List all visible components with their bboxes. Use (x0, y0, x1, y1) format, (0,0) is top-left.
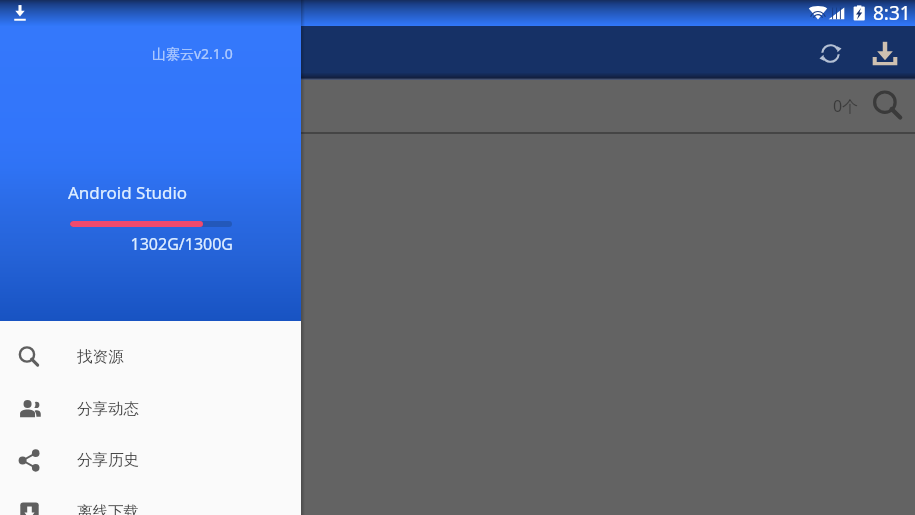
staticText: 山寨云v2.1.0 (152, 44, 233, 63)
staticText: 8:31 (873, 0, 911, 26)
staticText: 找资源 (77, 347, 124, 367)
staticText: 离线下载 (77, 502, 139, 515)
button[interactable]: 离线下载 (0, 486, 301, 515)
button[interactable]: Search (865, 83, 911, 129)
button[interactable]: Download (862, 30, 908, 76)
button[interactable]: Refresh (807, 30, 853, 76)
button[interactable]: 分享动态 (0, 383, 301, 435)
staticText: 分享动态 (77, 399, 139, 419)
staticText: 1302G/1300G (70, 233, 233, 255)
staticText: 分享历史 (77, 450, 139, 470)
staticText: Android Studio (68, 181, 188, 204)
button[interactable]: 分享历史 (0, 434, 301, 486)
button[interactable]: 找资源 (0, 331, 301, 383)
staticText: 0个 (833, 95, 859, 117)
